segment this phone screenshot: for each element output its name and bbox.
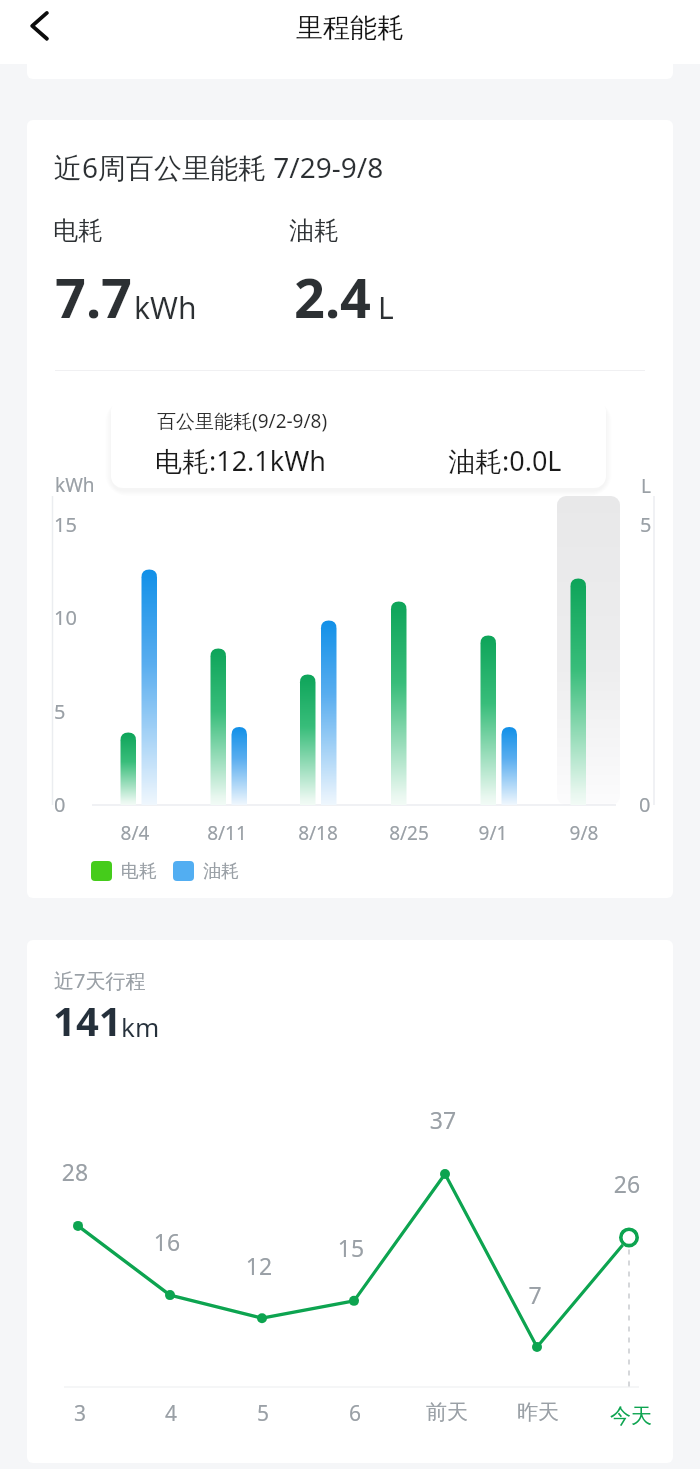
staticText: 近7天行程 <box>54 967 146 994</box>
button[interactable]: 近7天行程 <box>27 940 673 1463</box>
staticText: 8/11 <box>167 820 287 846</box>
staticText: 油耗:0.0L <box>448 442 562 479</box>
staticText: 9/1 <box>433 820 553 846</box>
staticText: 电耗:12.1kWh <box>155 442 327 479</box>
staticText: 7 <box>475 1279 595 1310</box>
staticText: 15 <box>54 511 77 538</box>
staticText: kWh <box>55 472 95 498</box>
staticText: 26 <box>567 1168 673 1199</box>
staticText: 油耗 <box>203 860 239 883</box>
staticText: 0 <box>639 791 651 818</box>
staticText: 7.7 <box>55 260 132 334</box>
staticText: km <box>121 1009 160 1044</box>
staticText: L <box>641 473 651 499</box>
staticText: 8/4 <box>75 820 195 846</box>
staticText: 电耗 <box>53 215 103 246</box>
staticText: 8/18 <box>258 820 378 846</box>
staticText: 今天 <box>571 1403 673 1429</box>
button[interactable]: 近6周百公里能耗 7/29-9/8 <box>27 120 673 898</box>
staticText: 8/25 <box>349 820 469 846</box>
staticText: 12 <box>199 1250 319 1281</box>
staticText: 0 <box>54 791 66 818</box>
staticText: 昨天 <box>478 1399 598 1425</box>
staticText: 3 <box>27 1399 140 1428</box>
staticText: 16 <box>107 1226 227 1257</box>
staticText: 10 <box>54 604 77 631</box>
staticText: 141 <box>53 993 122 1047</box>
staticText: 里程能耗 <box>296 11 404 45</box>
staticText: 5 <box>640 511 652 538</box>
staticText: 6 <box>295 1399 415 1428</box>
staticText: 9/8 <box>524 820 644 846</box>
button[interactable]: 油耗 <box>170 857 242 885</box>
staticText: 2.4 <box>294 260 371 334</box>
staticText: 28 <box>27 1156 135 1187</box>
button[interactable]: 电耗 <box>88 857 160 885</box>
staticText: 4 <box>111 1399 231 1428</box>
staticText: 百公里能耗(9/2-9/8) <box>157 408 328 434</box>
staticText: 近6周百公里能耗 7/29-9/8 <box>54 148 384 186</box>
staticText: 前天 <box>387 1399 507 1425</box>
staticText: kWh <box>134 287 197 328</box>
staticText: 15 <box>291 1232 411 1263</box>
staticText: 电耗 <box>121 860 157 883</box>
staticText: 5 <box>203 1399 323 1428</box>
staticText: 5 <box>54 698 66 725</box>
staticText: L <box>378 287 394 328</box>
staticText: 油耗 <box>289 215 339 246</box>
staticText: 37 <box>383 1104 503 1135</box>
button[interactable]: Back <box>7 0 73 64</box>
